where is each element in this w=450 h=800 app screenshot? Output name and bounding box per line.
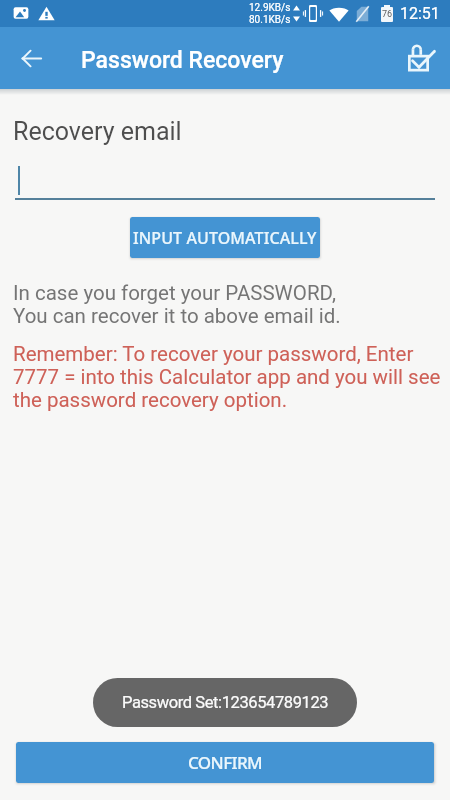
button[interactable]: CONFIRM bbox=[16, 742, 434, 783]
staticText: 80.1KB/s bbox=[249, 14, 291, 26]
staticText: INPUT AUTOMATICALLY bbox=[133, 227, 317, 249]
staticText: CONFIRM bbox=[188, 751, 263, 774]
staticText: 12:51 bbox=[400, 4, 440, 23]
staticText: 76 bbox=[382, 9, 393, 20]
staticText: Recovery email bbox=[13, 117, 182, 146]
button[interactable]: INPUT AUTOMATICALLY bbox=[130, 217, 320, 258]
staticText: 12.9KB/s bbox=[249, 2, 291, 14]
staticText: Password Recovery bbox=[81, 47, 284, 74]
staticText: Password Set:123654789123 bbox=[122, 693, 329, 712]
staticText: Remember: To recover your password, Ente… bbox=[13, 342, 445, 412]
staticText: In case you forget your PASSWORD, You ca… bbox=[13, 281, 341, 328]
button[interactable]: Save password bbox=[402, 36, 446, 80]
button[interactable]: Back bbox=[9, 36, 53, 80]
